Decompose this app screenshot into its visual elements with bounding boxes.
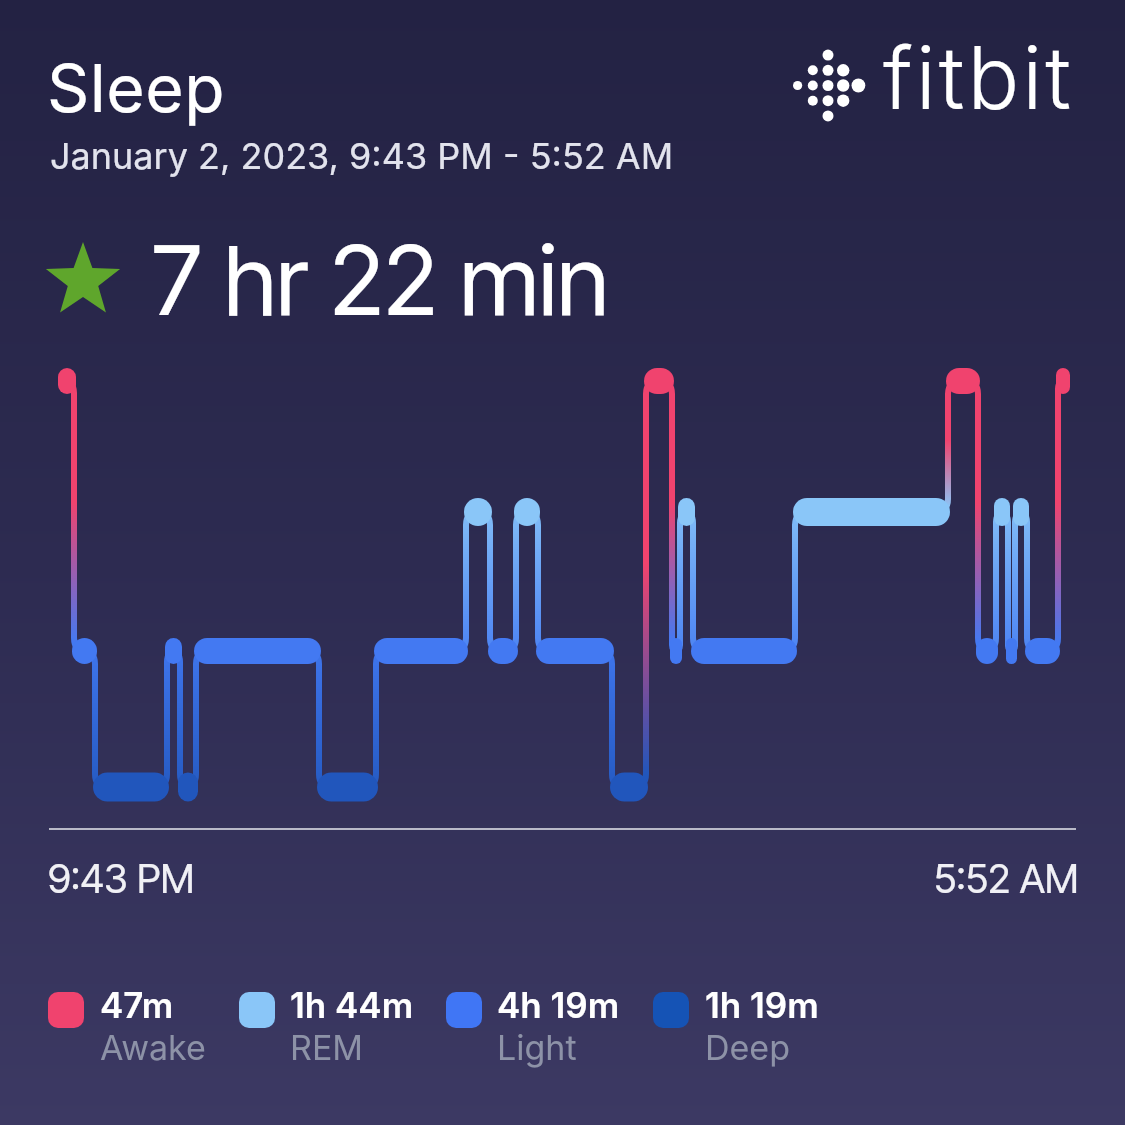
staticText: 9:43 PM — [48, 854, 195, 902]
staticText: January 2, 2023, 9:43 PM - 5:52 AM — [50, 134, 674, 178]
staticText: 4h 19m — [497, 984, 620, 1026]
button[interactable] — [653, 992, 689, 1028]
button[interactable]: fitbit — [883, 26, 1074, 130]
staticText: 47m — [100, 984, 174, 1026]
button[interactable] — [239, 992, 275, 1028]
staticText: Deep — [705, 1027, 790, 1068]
staticText: 5:52 AM — [934, 854, 1079, 902]
staticText: Awake — [100, 1027, 206, 1068]
button[interactable] — [48, 992, 84, 1028]
staticText: Light — [497, 1027, 577, 1068]
staticText: 1h 19m — [705, 984, 819, 1026]
staticText: 7 hr 22 min — [152, 222, 609, 338]
staticText: REM — [290, 1027, 364, 1068]
staticText: 1h 44m — [290, 984, 414, 1026]
staticText: Sleep — [47, 48, 226, 128]
button[interactable] — [446, 992, 482, 1028]
